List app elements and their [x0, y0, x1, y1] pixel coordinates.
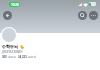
staticText: 팔로워	[28, 55, 37, 59]
staticText: 34,223	[18, 55, 27, 59]
staticText: 팔로잉	[8, 55, 17, 59]
button[interactable]: Back	[3, 11, 12, 20]
staticText: 300	[2, 55, 7, 59]
button[interactable]: More options	[89, 11, 98, 20]
staticText: @SUPDUCKMATH	[2, 50, 23, 54]
staticText: 10:28	[11, 3, 19, 7]
button[interactable]: Profile photo	[2, 28, 16, 42]
staticText: 수학두뇌	[2, 44, 18, 49]
button[interactable]: Search	[78, 11, 87, 20]
